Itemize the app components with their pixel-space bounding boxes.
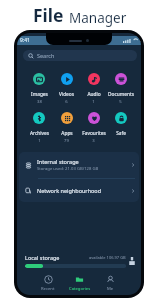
- staticText: Videos: [59, 91, 74, 98]
- staticText: 3: [92, 138, 95, 144]
- staticText: 38: [37, 99, 42, 105]
- staticText: Recent: [41, 286, 55, 292]
- staticText: 9:41: [20, 37, 30, 44]
- button[interactable]: Videos: [53, 73, 80, 105]
- button[interactable]: Me: [95, 272, 126, 295]
- staticText: Images: [31, 91, 48, 98]
- other: Storage settings: [129, 257, 135, 265]
- staticText: 6: [65, 99, 68, 105]
- staticText: Apps: [61, 130, 73, 137]
- staticText: 1: [38, 138, 41, 144]
- staticText: File: [33, 3, 69, 27]
- button[interactable]: Documents: [107, 73, 134, 105]
- button[interactable]: Internal storage: [19, 152, 139, 178]
- staticText: Manager: [69, 9, 127, 27]
- button[interactable]: Archives: [25, 112, 53, 144]
- staticText: Archives: [30, 130, 49, 137]
- button[interactable]: Network neighbourhood: [19, 179, 139, 202]
- staticText: available 106.97 GB: [89, 255, 126, 260]
- button[interactable]: Search: [23, 50, 137, 61]
- staticText: Internal storage: [37, 158, 79, 165]
- staticText: 5: [119, 99, 122, 105]
- staticText: Favourites: [82, 130, 106, 137]
- staticText: Me: [107, 286, 114, 292]
- button[interactable]: Recent: [32, 272, 64, 295]
- staticText: Documents: [108, 91, 134, 98]
- staticText: Local storage: [25, 254, 60, 261]
- staticText: Storage used: 21.03 GB/128 GB: [37, 166, 99, 172]
- button[interactable]: Apps: [53, 112, 80, 144]
- staticText: Categories: [69, 286, 91, 292]
- button[interactable]: Images: [25, 73, 53, 105]
- button[interactable]: Audio: [80, 73, 107, 105]
- staticText: Network neighbourhood: [37, 187, 102, 194]
- button[interactable]: Favourites: [80, 112, 107, 144]
- button[interactable]: Categories: [64, 272, 95, 295]
- staticText: 1: [92, 99, 95, 105]
- staticText: 79: [64, 138, 69, 144]
- staticText: Search: [37, 52, 55, 59]
- staticText: Audio: [87, 91, 101, 98]
- staticText: Safe: [116, 130, 126, 137]
- button[interactable]: Safe: [107, 112, 134, 137]
